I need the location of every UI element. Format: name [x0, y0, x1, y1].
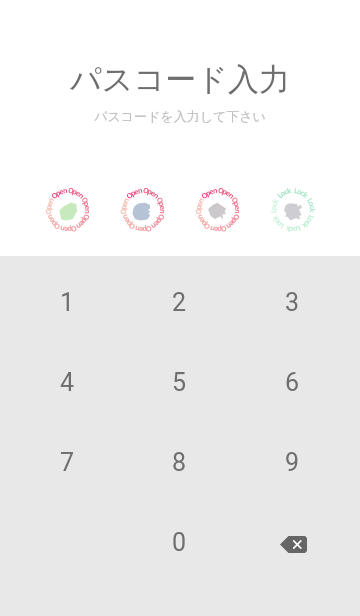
- staticText: 9: [285, 448, 300, 477]
- staticText: パスコード入力: [0, 60, 360, 99]
- staticText: 5: [172, 368, 187, 397]
- button[interactable]: 8: [123, 422, 236, 502]
- staticText: 2: [172, 288, 187, 317]
- staticText: 3: [285, 288, 300, 317]
- button[interactable]: 2: [123, 262, 236, 342]
- button[interactable]: Backspace: [236, 502, 349, 582]
- button[interactable]: 4: [11, 342, 123, 422]
- staticText: 6: [285, 368, 300, 397]
- button[interactable]: 9: [236, 422, 349, 502]
- button[interactable]: 5: [123, 342, 236, 422]
- staticText: 8: [172, 448, 187, 477]
- staticText: 4: [60, 368, 75, 397]
- button[interactable]: 6: [236, 342, 349, 422]
- staticText: 1: [60, 288, 75, 317]
- staticText: パスコードを入力して下さい: [0, 108, 360, 124]
- button[interactable]: 3: [236, 262, 349, 342]
- button[interactable]: 7: [11, 422, 123, 502]
- staticText: 0: [172, 528, 187, 557]
- staticText: 7: [60, 448, 75, 477]
- other: Backspace: [273, 522, 313, 562]
- button[interactable]: 0: [123, 502, 236, 582]
- button[interactable]: 1: [11, 262, 123, 342]
